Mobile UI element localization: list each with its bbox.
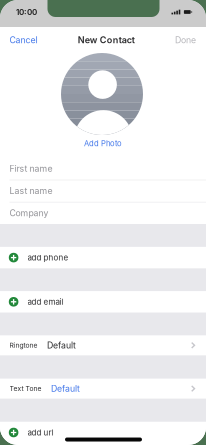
staticText: Default <box>47 340 76 351</box>
staticText: 10:00 <box>16 7 37 17</box>
button[interactable]: add url <box>0 422 206 443</box>
staticText: Text Tone <box>9 385 41 393</box>
staticText: First name <box>9 163 52 174</box>
staticText: add url <box>28 428 54 437</box>
staticText: Ringtone <box>9 341 37 349</box>
button[interactable]: add email <box>0 291 206 313</box>
button[interactable]: Cancel <box>0 30 37 50</box>
staticText: Done <box>175 35 196 45</box>
staticText: New Contact <box>78 34 135 45</box>
button[interactable]: Text Tone <box>0 379 206 399</box>
staticText: Cancel <box>9 35 37 45</box>
staticText: Company <box>9 208 48 218</box>
staticText: add email <box>28 297 64 307</box>
button[interactable]: Ringtone <box>0 335 206 355</box>
button[interactable]: Done <box>175 30 206 50</box>
staticText: Default <box>51 383 80 394</box>
staticText: Last name <box>9 186 52 196</box>
button[interactable]: Add Photo <box>80 137 126 150</box>
button[interactable]: add phone <box>0 247 206 268</box>
staticText: Add Photo <box>84 139 122 148</box>
staticText: add phone <box>28 253 69 262</box>
